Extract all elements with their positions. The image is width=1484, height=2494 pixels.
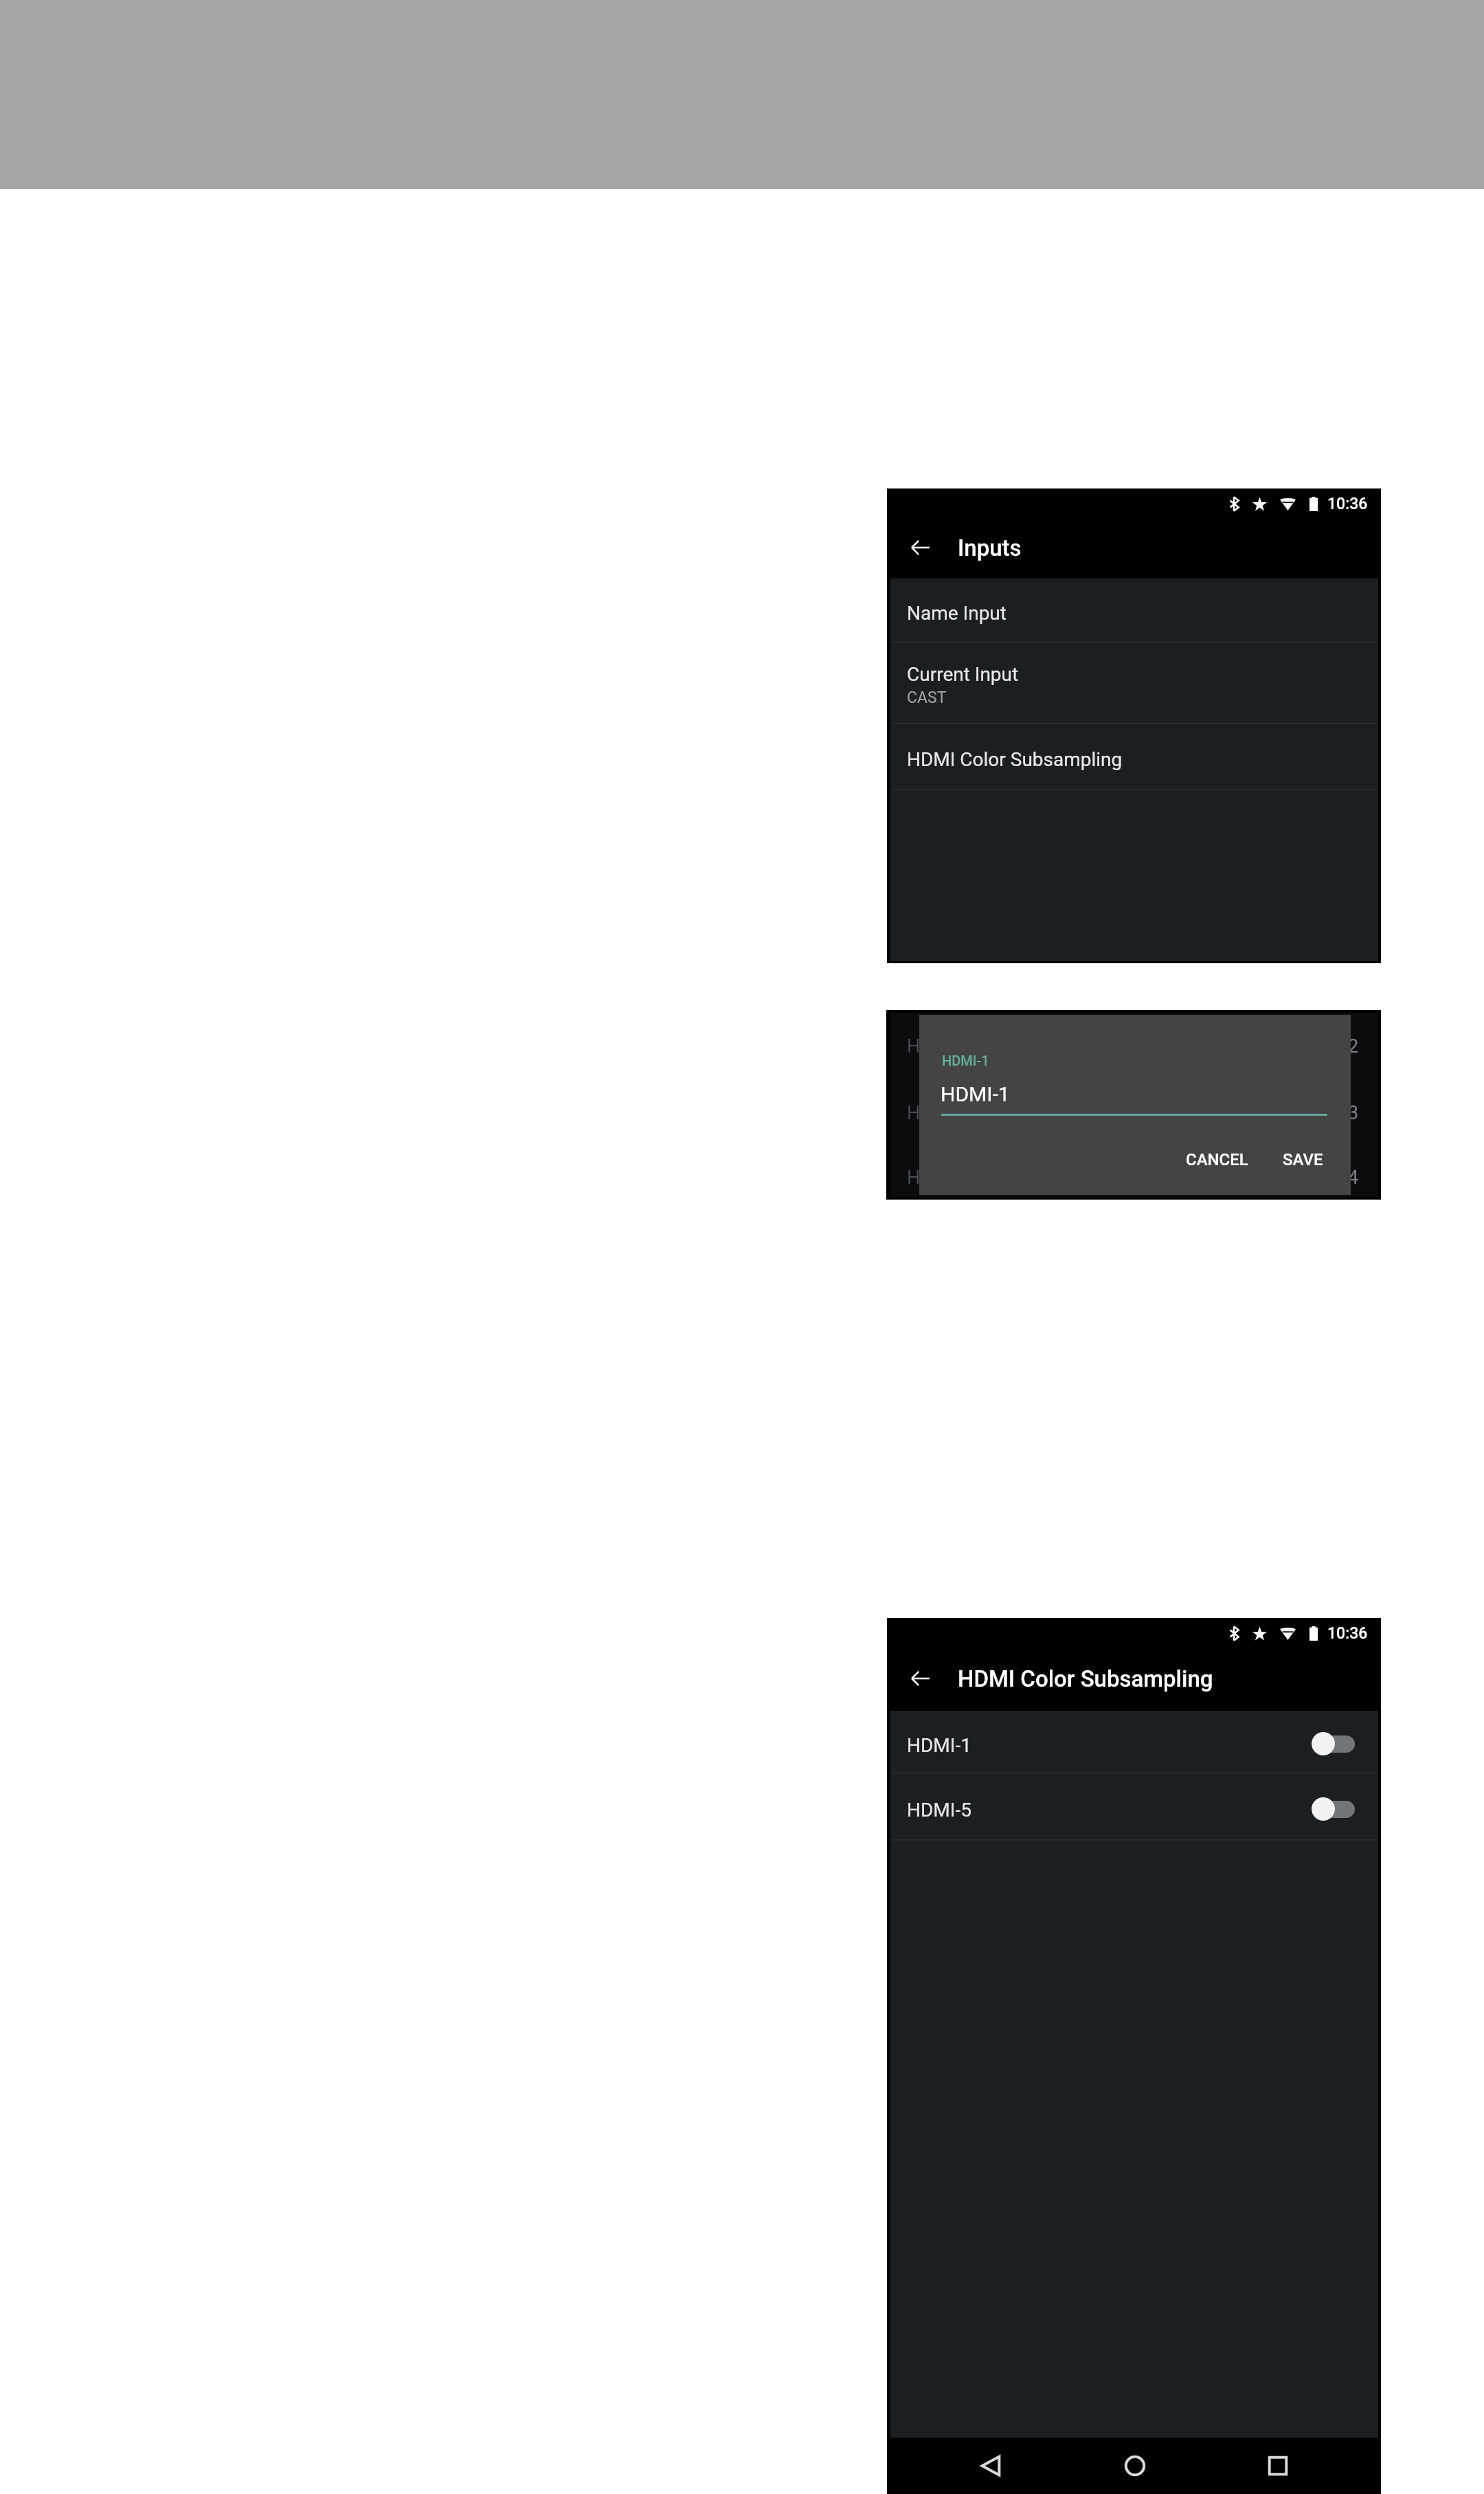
button[interactable]: HDMI-5 <box>890 1774 1378 1839</box>
staticText: SAVE <box>1283 1150 1323 1169</box>
staticText: HDMI Color Subsampling <box>907 748 1123 771</box>
staticText: CAST <box>907 688 947 707</box>
staticText: Current Input <box>907 663 1019 686</box>
staticText: 10:36 <box>1327 495 1368 513</box>
button[interactable]: Back <box>911 1669 930 1688</box>
staticText: HDMI Color Subsampling <box>958 1665 1213 1692</box>
button[interactable]: Back <box>890 517 1378 578</box>
button[interactable]: Back <box>956 2438 1025 2494</box>
button[interactable]: HDMI Color Subsampling <box>890 724 1378 789</box>
staticText: Inputs <box>958 535 1022 561</box>
staticText: HDMI-1 <box>941 1082 1010 1106</box>
button[interactable]: HDMI-2 <box>890 1026 1378 1066</box>
staticText: Name Input <box>907 602 1007 625</box>
button[interactable]: HDMI-3 <box>890 1093 1378 1133</box>
staticText: 2 <box>1348 1035 1359 1057</box>
staticText: HDMI-4 <box>907 1167 969 1189</box>
button[interactable]: Name Input <box>890 578 1378 642</box>
staticText: 3 <box>1348 1102 1359 1124</box>
staticText: HDMI-1 <box>907 1734 971 1757</box>
staticText: HDMI-1 <box>942 1053 989 1068</box>
button[interactable]: Toggle <box>1312 1732 1355 1755</box>
button[interactable]: HDMI-4 <box>890 1158 1378 1198</box>
button[interactable]: Back <box>911 538 930 557</box>
button[interactable]: Toggle <box>1312 1797 1355 1821</box>
staticText: 4 <box>1348 1167 1359 1189</box>
button[interactable]: Back <box>890 1646 1378 1711</box>
staticText: HDMI-2 <box>907 1035 969 1057</box>
button[interactable]: HDMI-1 <box>890 1711 1378 1773</box>
button[interactable]: SAVE <box>1276 1145 1330 1175</box>
staticText: 10:36 <box>1327 1624 1368 1643</box>
staticText: HDMI-5 <box>907 1799 971 1821</box>
button[interactable]: Recents <box>1244 2438 1312 2494</box>
staticText: HDMI-3 <box>907 1102 969 1124</box>
button[interactable]: Current Input <box>890 643 1378 723</box>
button[interactable]: CANCEL <box>1179 1145 1255 1175</box>
button[interactable]: Home <box>1101 2438 1169 2494</box>
staticText: CANCEL <box>1186 1150 1248 1169</box>
